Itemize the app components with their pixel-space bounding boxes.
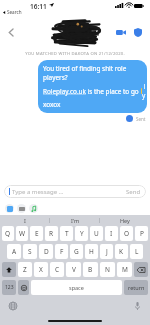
- staticText: I: [110, 229, 113, 238]
- button[interactable]: GIF: [17, 204, 26, 213]
- staticText: U: [94, 229, 99, 238]
- staticText: E: [35, 229, 39, 238]
- button[interactable]: H: [85, 244, 98, 259]
- button[interactable]: E: [30, 226, 43, 241]
- button[interactable]: Safety shield: [131, 25, 145, 39]
- button[interactable]: J: [100, 244, 113, 259]
- staticText: D: [44, 247, 49, 256]
- staticText: X: [39, 265, 43, 274]
- staticText: V: [72, 265, 76, 274]
- staticText: T: [65, 229, 69, 238]
- staticText: Z: [23, 265, 27, 274]
- button[interactable]: G: [70, 244, 83, 259]
- button[interactable]: W: [16, 226, 28, 241]
- staticText: 123: [5, 284, 14, 291]
- staticText: Send: [126, 188, 141, 196]
- button[interactable]: Stickers: [5, 204, 14, 213]
- button[interactable]: I'm: [50, 215, 100, 226]
- button[interactable]: B: [83, 262, 98, 277]
- button[interactable]: D: [39, 244, 53, 259]
- staticText: xoxox: [43, 100, 61, 109]
- staticText: O: [124, 229, 130, 238]
- button[interactable]: return: [124, 280, 148, 295]
- staticText: J: [106, 247, 108, 256]
- button[interactable]: I: [0, 215, 50, 226]
- staticText: H: [89, 247, 94, 256]
- staticText: Hey: [120, 217, 130, 224]
- button[interactable]: O: [120, 226, 133, 241]
- button[interactable]: 123: [2, 280, 16, 295]
- button[interactable]: Q: [2, 226, 14, 241]
- button[interactable]: Dictate: [132, 301, 142, 311]
- staticText: space: [69, 284, 84, 291]
- button[interactable]: You tired of finding shit role players?: [38, 60, 147, 113]
- staticText: return: [128, 284, 145, 291]
- staticText: K: [119, 247, 124, 256]
- button[interactable]: Video chat: [114, 25, 128, 39]
- staticText: F: [60, 247, 64, 256]
- staticText: A: [12, 247, 17, 256]
- staticText: I'm: [71, 217, 80, 224]
- staticText: W: [19, 229, 26, 238]
- staticText: G: [74, 247, 79, 256]
- button[interactable]: Type a message ...: [4, 185, 146, 198]
- button[interactable]: U: [90, 226, 103, 241]
- staticText: YOU MATCHED WITH DAKOTA ON 21/12/2020.: [0, 51, 150, 57]
- button[interactable]: Back: [4, 25, 18, 39]
- staticText: You tired of finding shit role players?: [43, 64, 142, 82]
- staticText: Roleplay.co.uk: [43, 87, 86, 96]
- staticText: B: [88, 265, 93, 274]
- button[interactable]: R: [45, 226, 58, 241]
- staticText: Y: [80, 229, 84, 238]
- button[interactable]: A: [7, 244, 21, 259]
- button[interactable]: P: [135, 226, 148, 241]
- button[interactable]: S: [23, 244, 37, 259]
- staticText: Q: [5, 229, 11, 238]
- button[interactable]: Backspace: [134, 262, 148, 277]
- button[interactable]: F: [55, 244, 68, 259]
- staticText: Type a message ...: [12, 188, 64, 196]
- button[interactable]: Y: [75, 226, 88, 241]
- button[interactable]: space: [31, 280, 122, 295]
- button[interactable]: Emoji: [18, 280, 29, 295]
- button[interactable]: I: [105, 226, 118, 241]
- staticText: Search: [7, 9, 22, 15]
- staticText: is the place to go: [86, 87, 141, 96]
- staticText: I: [24, 217, 26, 224]
- button[interactable]: N: [100, 262, 115, 277]
- staticText: C: [55, 265, 60, 274]
- staticText: R: [49, 229, 54, 238]
- staticText: 16:11: [30, 2, 47, 11]
- button[interactable]: M: [117, 262, 132, 277]
- button[interactable]: Hey: [100, 215, 150, 226]
- button[interactable]: X: [34, 262, 48, 277]
- staticText: P: [140, 229, 144, 238]
- staticText: Sent: [136, 116, 146, 122]
- button[interactable]: Change keyboard: [8, 301, 18, 311]
- button[interactable]: L: [130, 244, 143, 259]
- button[interactable]: C: [50, 262, 64, 277]
- button[interactable]: K: [115, 244, 128, 259]
- staticText: S: [28, 247, 32, 256]
- staticText: M: [122, 265, 128, 274]
- button[interactable]: V: [66, 262, 81, 277]
- staticText: L: [135, 247, 139, 256]
- button[interactable]: Shift: [2, 262, 16, 277]
- button[interactable]: T: [60, 226, 73, 241]
- staticText: N: [105, 265, 110, 274]
- button[interactable]: Music: [29, 204, 38, 213]
- button[interactable]: Z: [18, 262, 32, 277]
